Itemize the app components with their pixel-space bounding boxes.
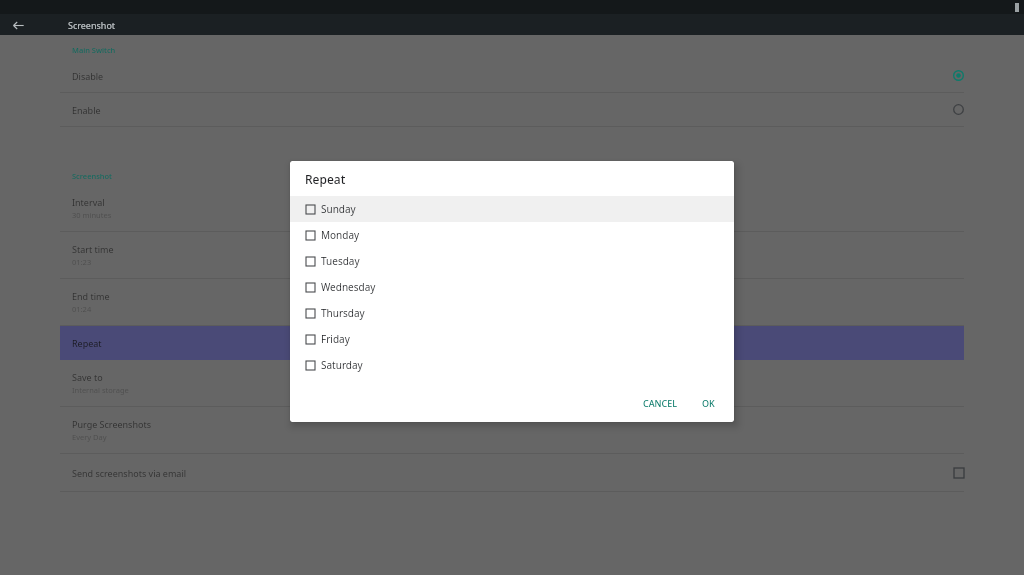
button[interactable]: Start time <box>0 232 1024 278</box>
button[interactable]: Back <box>8 15 28 35</box>
button[interactable]: Wednesday <box>290 274 734 300</box>
staticText: Monday <box>321 228 360 242</box>
button[interactable]: Interval <box>0 185 1024 231</box>
staticText: 01:23 <box>72 257 92 267</box>
staticText: Tuesday <box>321 254 360 268</box>
button[interactable]: Tuesday <box>290 248 734 274</box>
staticText: Start time <box>72 243 114 255</box>
button[interactable]: Friday <box>290 326 734 352</box>
staticText: End time <box>72 290 110 302</box>
staticText: Main Switch <box>72 45 116 55</box>
button[interactable]: Disable <box>0 59 1024 92</box>
button[interactable]: Thursday <box>290 300 734 326</box>
staticText: Internal storage <box>72 385 129 395</box>
staticText: Save to <box>72 371 103 383</box>
button[interactable]: Purge Screenshots <box>0 407 1024 453</box>
button[interactable]: CANCEL <box>637 393 684 413</box>
staticText: 01:24 <box>72 304 92 314</box>
staticText: Send screenshots via email <box>72 467 954 479</box>
button[interactable]: Monday <box>290 222 734 248</box>
button[interactable]: Sunday <box>290 196 734 222</box>
staticText: Every Day <box>72 432 107 442</box>
button[interactable]: Send screenshots via email <box>0 454 1024 491</box>
staticText: 30 minutes <box>72 210 112 220</box>
staticText: Repeat <box>305 171 346 187</box>
staticText: Screenshot <box>72 171 112 181</box>
staticText: OK <box>702 397 715 409</box>
staticText: Thursday <box>321 306 365 320</box>
staticText: Sunday <box>321 202 356 216</box>
staticText: Wednesday <box>321 280 376 294</box>
staticText: Friday <box>321 332 350 346</box>
button[interactable]: Repeat <box>60 326 964 360</box>
staticText: Interval <box>72 196 105 208</box>
button[interactable]: Saturday <box>290 352 734 378</box>
staticText: Screenshot <box>68 19 116 31</box>
staticText: Saturday <box>321 358 363 372</box>
staticText: Repeat <box>72 337 102 349</box>
staticText: CANCEL <box>643 397 678 409</box>
button[interactable]: OK <box>696 393 721 413</box>
staticText: Purge Screenshots <box>72 418 151 430</box>
button[interactable]: End time <box>0 279 1024 325</box>
button[interactable]: Save to <box>0 360 1024 406</box>
